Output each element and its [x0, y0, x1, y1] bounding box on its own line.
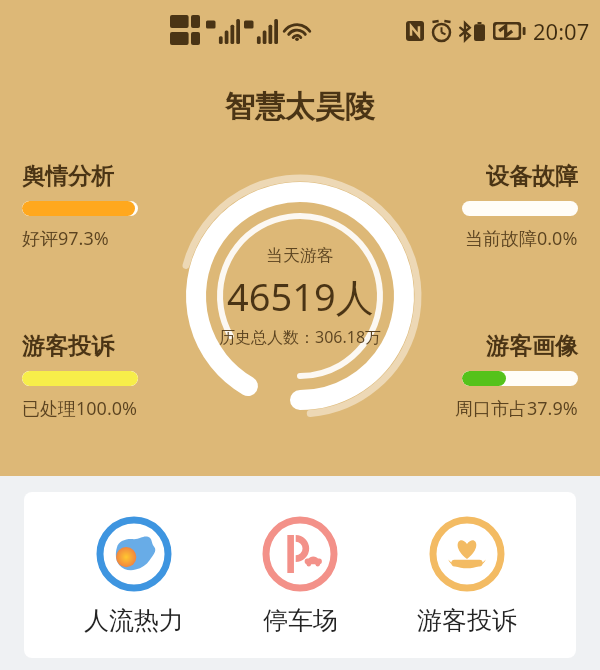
staticText: 游客投诉 — [22, 332, 114, 361]
staticText: 智慧太昊陵 — [225, 88, 375, 126]
staticText: 周口市占37.9% — [455, 396, 578, 421]
staticText: 游客投诉 — [417, 605, 517, 636]
button[interactable]: 停车场 — [243, 509, 357, 642]
staticText: 停车场 — [263, 605, 338, 636]
button[interactable]: 游客投诉 — [22, 332, 138, 421]
button[interactable]: 人流热力 — [66, 509, 202, 642]
staticText: 当天游客 — [266, 245, 334, 266]
staticText: 游客画像 — [486, 332, 578, 361]
other: 停车场 — [261, 515, 339, 593]
staticText: 46519人 — [227, 270, 374, 322]
button[interactable]: 舆情分析 — [22, 162, 138, 251]
button[interactable]: 设备故障 — [462, 162, 578, 251]
other: 游客投诉 — [428, 515, 506, 593]
staticText: 人流热力 — [84, 605, 184, 636]
staticText: 历史总人数：306.18万 — [219, 326, 382, 348]
other: 人流热力 — [95, 515, 173, 593]
staticText: 已处理100.0% — [22, 396, 137, 421]
staticText: 设备故障 — [486, 162, 578, 191]
button[interactable]: 游客投诉 — [399, 509, 535, 642]
staticText: 舆情分析 — [22, 162, 114, 191]
staticText: 20:07 — [533, 16, 590, 46]
staticText: 好评97.3% — [22, 226, 109, 251]
staticText: 当前故障0.0% — [465, 226, 578, 251]
button[interactable]: 游客画像 — [455, 332, 578, 421]
